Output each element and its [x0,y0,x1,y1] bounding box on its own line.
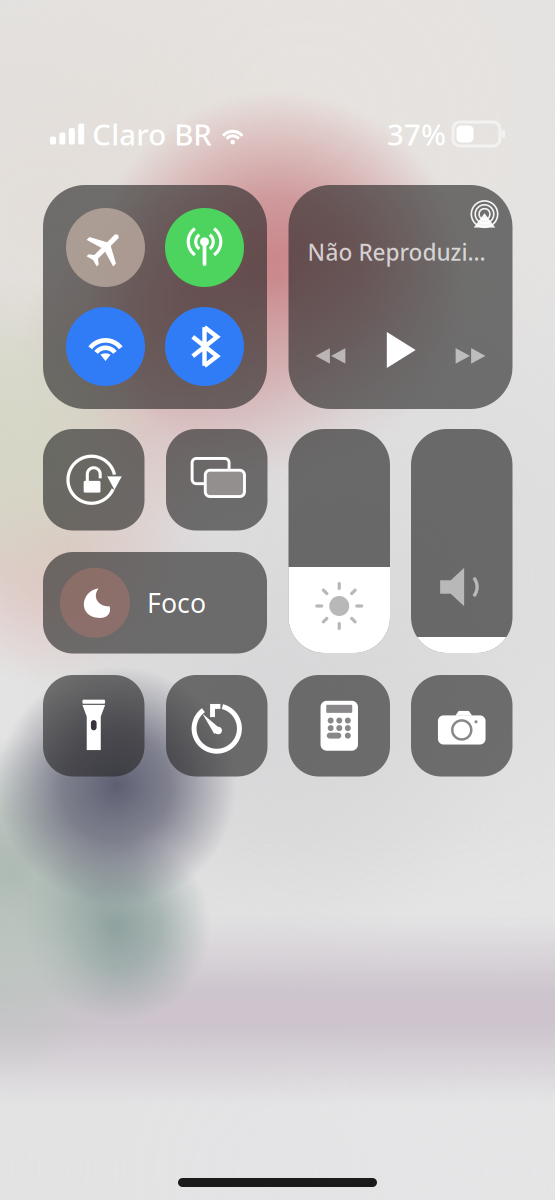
button[interactable]: Camera [411,675,512,776]
button[interactable]: Brightness [288,429,390,653]
button[interactable]: Fast Forward [442,325,498,375]
staticText: Foco [147,585,206,620]
button[interactable]: Timer [166,675,267,776]
button[interactable]: Flashlight [43,675,144,776]
button[interactable]: Focus [43,552,267,653]
button[interactable]: AirPlay [464,195,504,235]
staticText: Claro BR [92,114,212,153]
button[interactable]: Wi-Fi [66,307,145,386]
button[interactable]: Calculator [288,675,390,776]
button[interactable]: Airplane Mode [66,208,145,287]
staticText: 37% [387,114,446,153]
staticText: Não Reproduzi... [307,237,485,267]
button[interactable]: Rotation Lock [43,429,144,530]
button[interactable]: Cellular Data [165,208,244,287]
button[interactable]: Rewind [302,325,358,375]
button[interactable]: Bluetooth [165,307,244,386]
button[interactable]: Play [370,325,430,375]
button[interactable]: Volume [411,429,512,653]
button[interactable]: Screen Mirroring [166,429,267,530]
